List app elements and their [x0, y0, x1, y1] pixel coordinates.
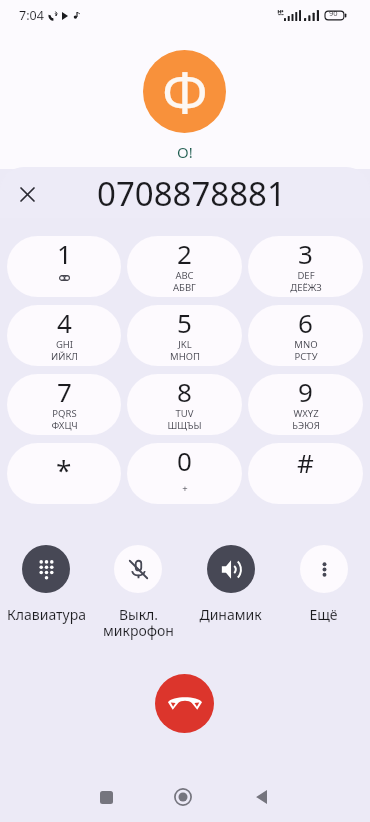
staticText: Клавиатура: [7, 605, 86, 624]
button[interactable]: 2: [127, 236, 242, 297]
button[interactable]: Ещё: [277, 545, 370, 624]
staticText: *: [56, 451, 72, 489]
button[interactable]: 6: [248, 305, 363, 366]
staticText: 4: [57, 305, 72, 340]
staticText: TUV ШЩЪЫ: [167, 407, 202, 432]
staticText: 0: [177, 443, 192, 478]
staticText: Динамик: [199, 605, 262, 624]
button[interactable]: Back: [239, 775, 283, 819]
staticText: Ф: [162, 53, 208, 129]
staticText: O!: [177, 142, 193, 162]
button[interactable]: Home: [161, 775, 205, 819]
staticText: Ещё: [309, 605, 338, 624]
button[interactable]: End call: [155, 674, 214, 733]
staticText: +: [182, 482, 188, 495]
button[interactable]: #: [248, 443, 363, 504]
staticText: WXYZ ЬЭЮЯ: [292, 407, 320, 432]
staticText: 0708878881: [97, 171, 286, 216]
button[interactable]: Clear: [9, 176, 45, 212]
staticText: DEF ДЕЁЖЗ: [290, 269, 322, 294]
button[interactable]: 7: [7, 374, 121, 435]
staticText: 8: [177, 374, 192, 409]
button[interactable]: 9: [248, 374, 363, 435]
button[interactable]: Выкл. микрофон: [92, 545, 184, 640]
staticText: PQRS ФХЦЧ: [51, 407, 78, 432]
staticText: 7: [57, 374, 72, 409]
button[interactable]: *: [7, 443, 121, 504]
button[interactable]: 5: [127, 305, 242, 366]
button[interactable]: Recents: [84, 775, 128, 819]
button[interactable]: 4: [7, 305, 121, 366]
staticText: 7:04: [19, 7, 44, 24]
staticText: 1: [57, 236, 72, 271]
button[interactable]: 3: [248, 236, 363, 297]
staticText: 3: [298, 236, 313, 271]
staticText: GHI ИЙКЛ: [51, 338, 78, 363]
button[interactable]: Клавиатура: [0, 545, 92, 624]
staticText: #: [297, 445, 314, 480]
staticText: 90: [329, 8, 338, 18]
staticText: 6: [298, 305, 313, 340]
staticText: MNO РСТУ: [294, 338, 318, 363]
button[interactable]: 1: [7, 236, 121, 297]
staticText: JKL МНОП: [170, 338, 200, 363]
staticText: ABC АБВГ: [173, 269, 196, 294]
staticText: 9: [298, 374, 313, 409]
staticText: 5: [177, 305, 192, 340]
button[interactable]: 0: [127, 443, 242, 504]
button[interactable]: 8: [127, 374, 242, 435]
button[interactable]: Динамик: [184, 545, 277, 624]
staticText: 2: [177, 236, 192, 271]
staticText: Выкл. микрофон: [103, 605, 174, 640]
